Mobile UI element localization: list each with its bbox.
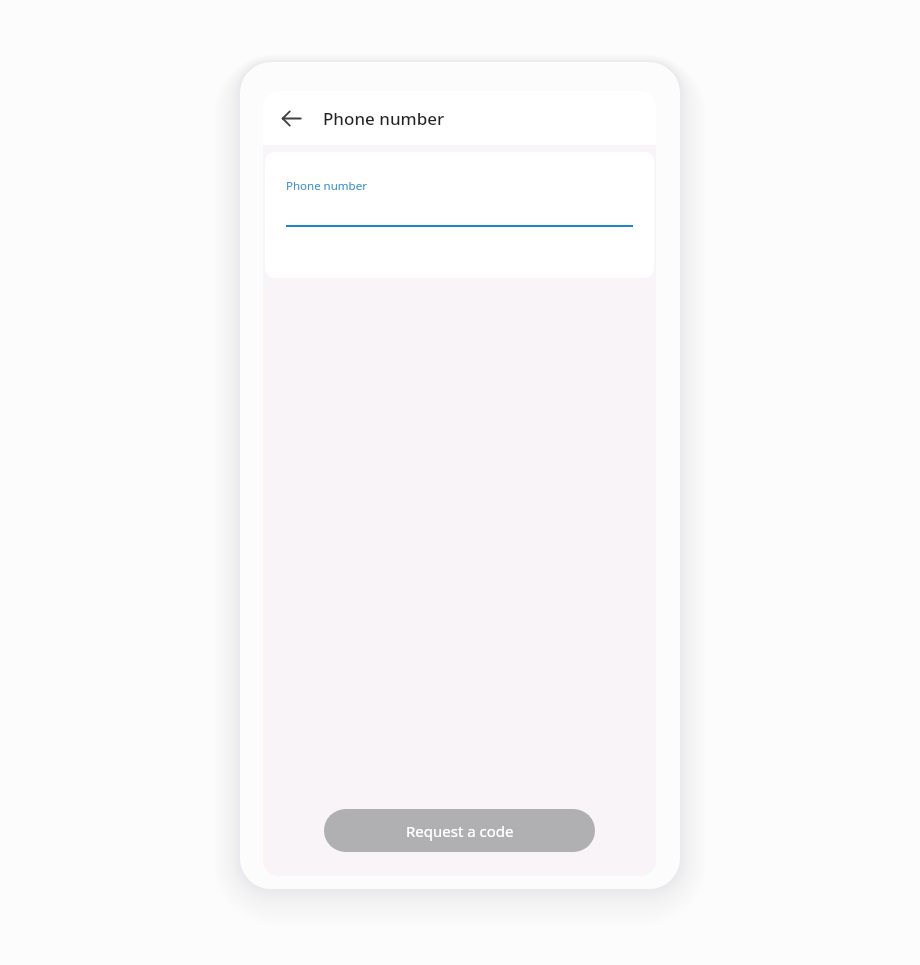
staticText: Phone number [323, 107, 445, 130]
button[interactable]: Request a code [324, 809, 595, 852]
staticText: Request a code [406, 821, 514, 841]
staticText: Phone number [286, 178, 367, 194]
button[interactable]: Back [271, 98, 311, 138]
button[interactable]: Phone number [265, 152, 654, 278]
